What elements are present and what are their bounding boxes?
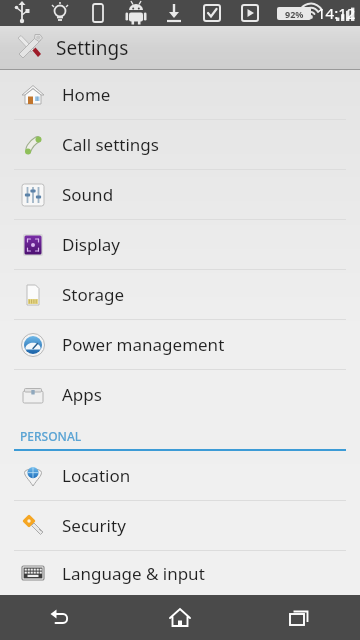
staticText: Sound — [62, 183, 114, 206]
button[interactable]: Security — [0, 501, 360, 550]
button[interactable]: Location — [0, 451, 360, 500]
staticText: Storage — [62, 283, 125, 306]
staticText: 92% — [285, 8, 304, 20]
staticText: Display — [62, 233, 120, 256]
staticText: Apps — [62, 383, 102, 406]
staticText: 14:12 — [317, 3, 356, 23]
staticText: Power management — [62, 333, 225, 356]
button[interactable]: Call settings — [0, 120, 360, 169]
staticText: PERSONAL — [20, 428, 82, 444]
button[interactable]: Apps — [0, 370, 360, 419]
button[interactable]: Back — [0, 595, 120, 640]
button[interactable]: Display — [0, 220, 360, 269]
button[interactable]: Language & input — [0, 551, 360, 595]
staticText: Location — [62, 464, 131, 487]
button[interactable]: Sound — [0, 170, 360, 219]
staticText: Call settings — [62, 133, 159, 156]
staticText: Security — [62, 514, 126, 537]
button[interactable]: Storage — [0, 270, 360, 319]
staticText: Language & input — [62, 562, 205, 585]
button[interactable]: Power management — [0, 320, 360, 369]
button[interactable]: Recent apps — [240, 595, 360, 640]
button[interactable]: Home — [0, 70, 360, 119]
button[interactable]: Home — [120, 595, 240, 640]
staticText: Settings — [56, 35, 129, 61]
staticText: Home — [62, 83, 111, 106]
